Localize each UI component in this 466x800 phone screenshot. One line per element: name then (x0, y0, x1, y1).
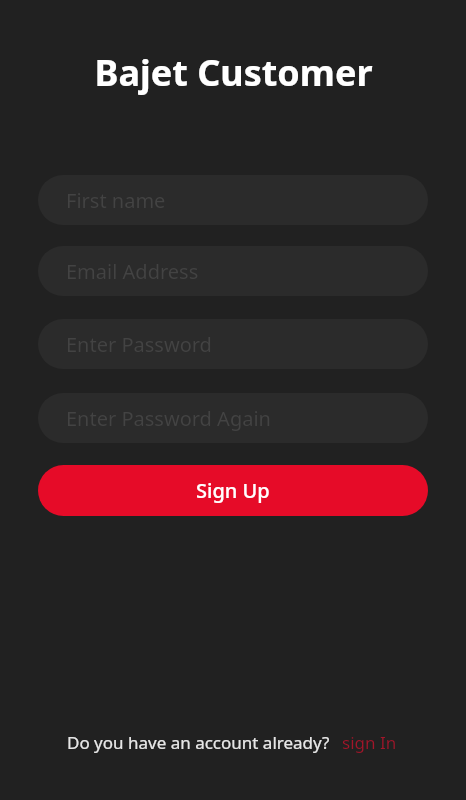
staticText: Email Address (66, 258, 199, 285)
button[interactable]: Enter Password (38, 319, 428, 369)
button[interactable]: sign In (340, 728, 399, 757)
staticText: Do you have an account already? (67, 731, 330, 754)
button[interactable]: Enter Password Again (38, 393, 428, 443)
staticText: Bajet Customer (94, 48, 373, 97)
staticText: sign In (342, 731, 397, 754)
staticText: Sign Up (196, 477, 270, 504)
button[interactable]: Email Address (38, 246, 428, 296)
staticText: Enter Password (66, 331, 212, 358)
staticText: Enter Password Again (66, 405, 271, 432)
button[interactable]: First name (38, 175, 428, 225)
button[interactable]: Sign Up (38, 465, 428, 516)
staticText: First name (66, 187, 166, 214)
